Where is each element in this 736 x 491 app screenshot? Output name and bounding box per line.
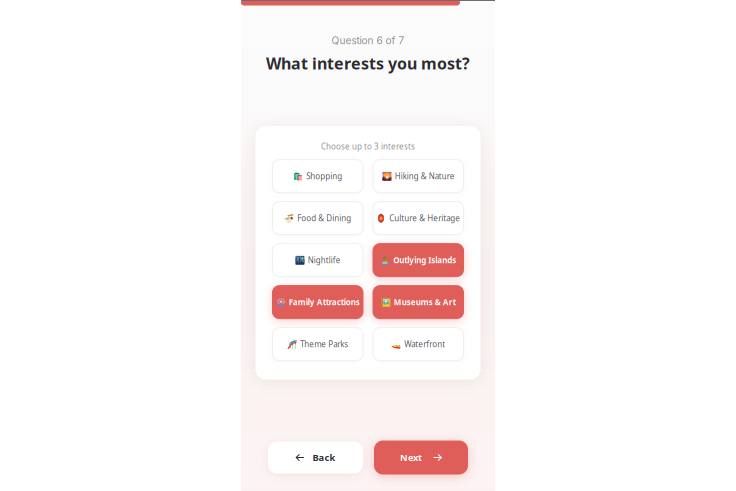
staticText: Choose up to 3 interests: [321, 141, 415, 152]
staticText: Theme Parks: [300, 339, 348, 349]
button[interactable]: 🖼️: [373, 286, 463, 319]
button[interactable]: 🏮: [373, 202, 463, 235]
staticText: 🖼️: [381, 298, 391, 307]
staticText: Hiking & Nature: [395, 171, 455, 181]
staticText: Waterfront: [404, 339, 445, 349]
staticText: 🛍️: [293, 172, 303, 181]
staticText: Outlying Islands: [393, 255, 456, 265]
button[interactable]: Next: [374, 440, 468, 474]
button[interactable]: 🍜: [272, 202, 363, 235]
button[interactable]: 🎢: [272, 328, 363, 361]
button[interactable]: 🌃: [272, 244, 363, 277]
staticText: 🚤: [391, 340, 401, 349]
staticText: Museums & Art: [394, 297, 456, 307]
button[interactable]: 🏝️: [373, 244, 463, 277]
staticText: 🎢: [287, 340, 297, 349]
staticText: 🎡: [276, 298, 286, 307]
staticText: 🌃: [295, 256, 305, 265]
button[interactable]: 🎡: [272, 286, 363, 319]
staticText: 🏝️: [380, 256, 390, 265]
staticText: Food & Dining: [297, 213, 351, 223]
button[interactable]: 🌄: [373, 160, 463, 193]
staticText: Question 6 of 7: [331, 34, 404, 47]
staticText: Next: [400, 451, 422, 464]
button[interactable]: 🚤: [373, 328, 463, 361]
staticText: Back: [312, 451, 335, 464]
staticText: What interests you most?: [266, 53, 470, 74]
staticText: 🌄: [382, 172, 392, 181]
button[interactable]: Back: [268, 441, 363, 473]
staticText: Culture & Heritage: [389, 213, 460, 223]
staticText: 🍜: [284, 214, 294, 223]
staticText: Nightlife: [308, 255, 341, 265]
staticText: 🏮: [376, 214, 386, 223]
staticText: Shopping: [306, 171, 342, 181]
staticText: Family Attractions: [289, 297, 360, 307]
button[interactable]: 🛍️: [272, 160, 363, 193]
